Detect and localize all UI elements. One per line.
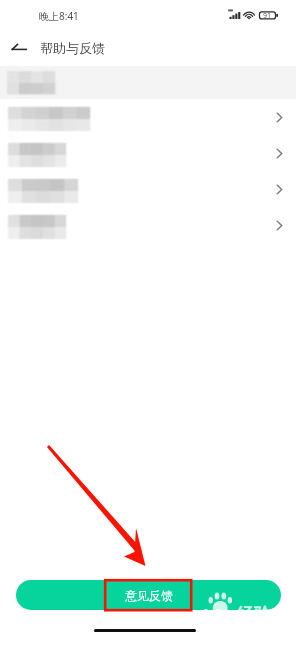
button[interactable] (0, 171, 296, 207)
staticText: 帮助与反馈 (40, 40, 105, 56)
button[interactable]: 意见反馈 (16, 580, 281, 610)
staticText: 经验 (237, 604, 271, 625)
staticText: 晚上8:41 (39, 9, 79, 23)
staticText: 91 (263, 11, 272, 21)
button[interactable] (0, 135, 296, 171)
button[interactable] (0, 99, 296, 135)
staticText: jingyan.baidu.com (181, 621, 259, 633)
staticText: 意见反馈 (125, 588, 173, 603)
button[interactable] (0, 207, 296, 243)
button[interactable]: 返回 (3, 31, 35, 63)
staticText: Baidu (179, 604, 234, 630)
